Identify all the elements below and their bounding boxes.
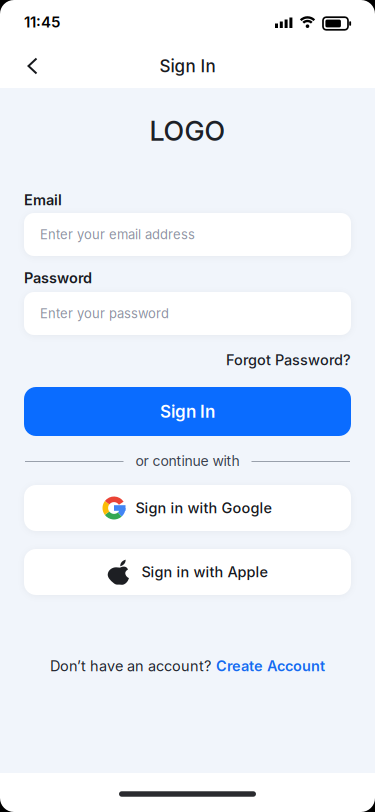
- staticText: Sign in with Apple: [141, 563, 268, 581]
- staticText: Sign in with Google: [135, 499, 272, 517]
- staticText: Create Account: [216, 657, 325, 675]
- staticText: Sign In: [159, 56, 215, 76]
- staticText: Forgot Password?: [226, 351, 351, 369]
- staticText: Enter your email address: [40, 227, 195, 242]
- staticText: Enter your password: [40, 306, 169, 321]
- staticText: Email: [24, 191, 62, 209]
- staticText: Password: [24, 269, 92, 287]
- staticText: 11:45: [24, 13, 60, 31]
- staticText: Sign In: [160, 401, 215, 422]
- staticText: Don’t have an account?: [50, 657, 211, 675]
- staticText: or continue with: [135, 452, 239, 469]
- staticText: LOGO: [149, 115, 225, 147]
